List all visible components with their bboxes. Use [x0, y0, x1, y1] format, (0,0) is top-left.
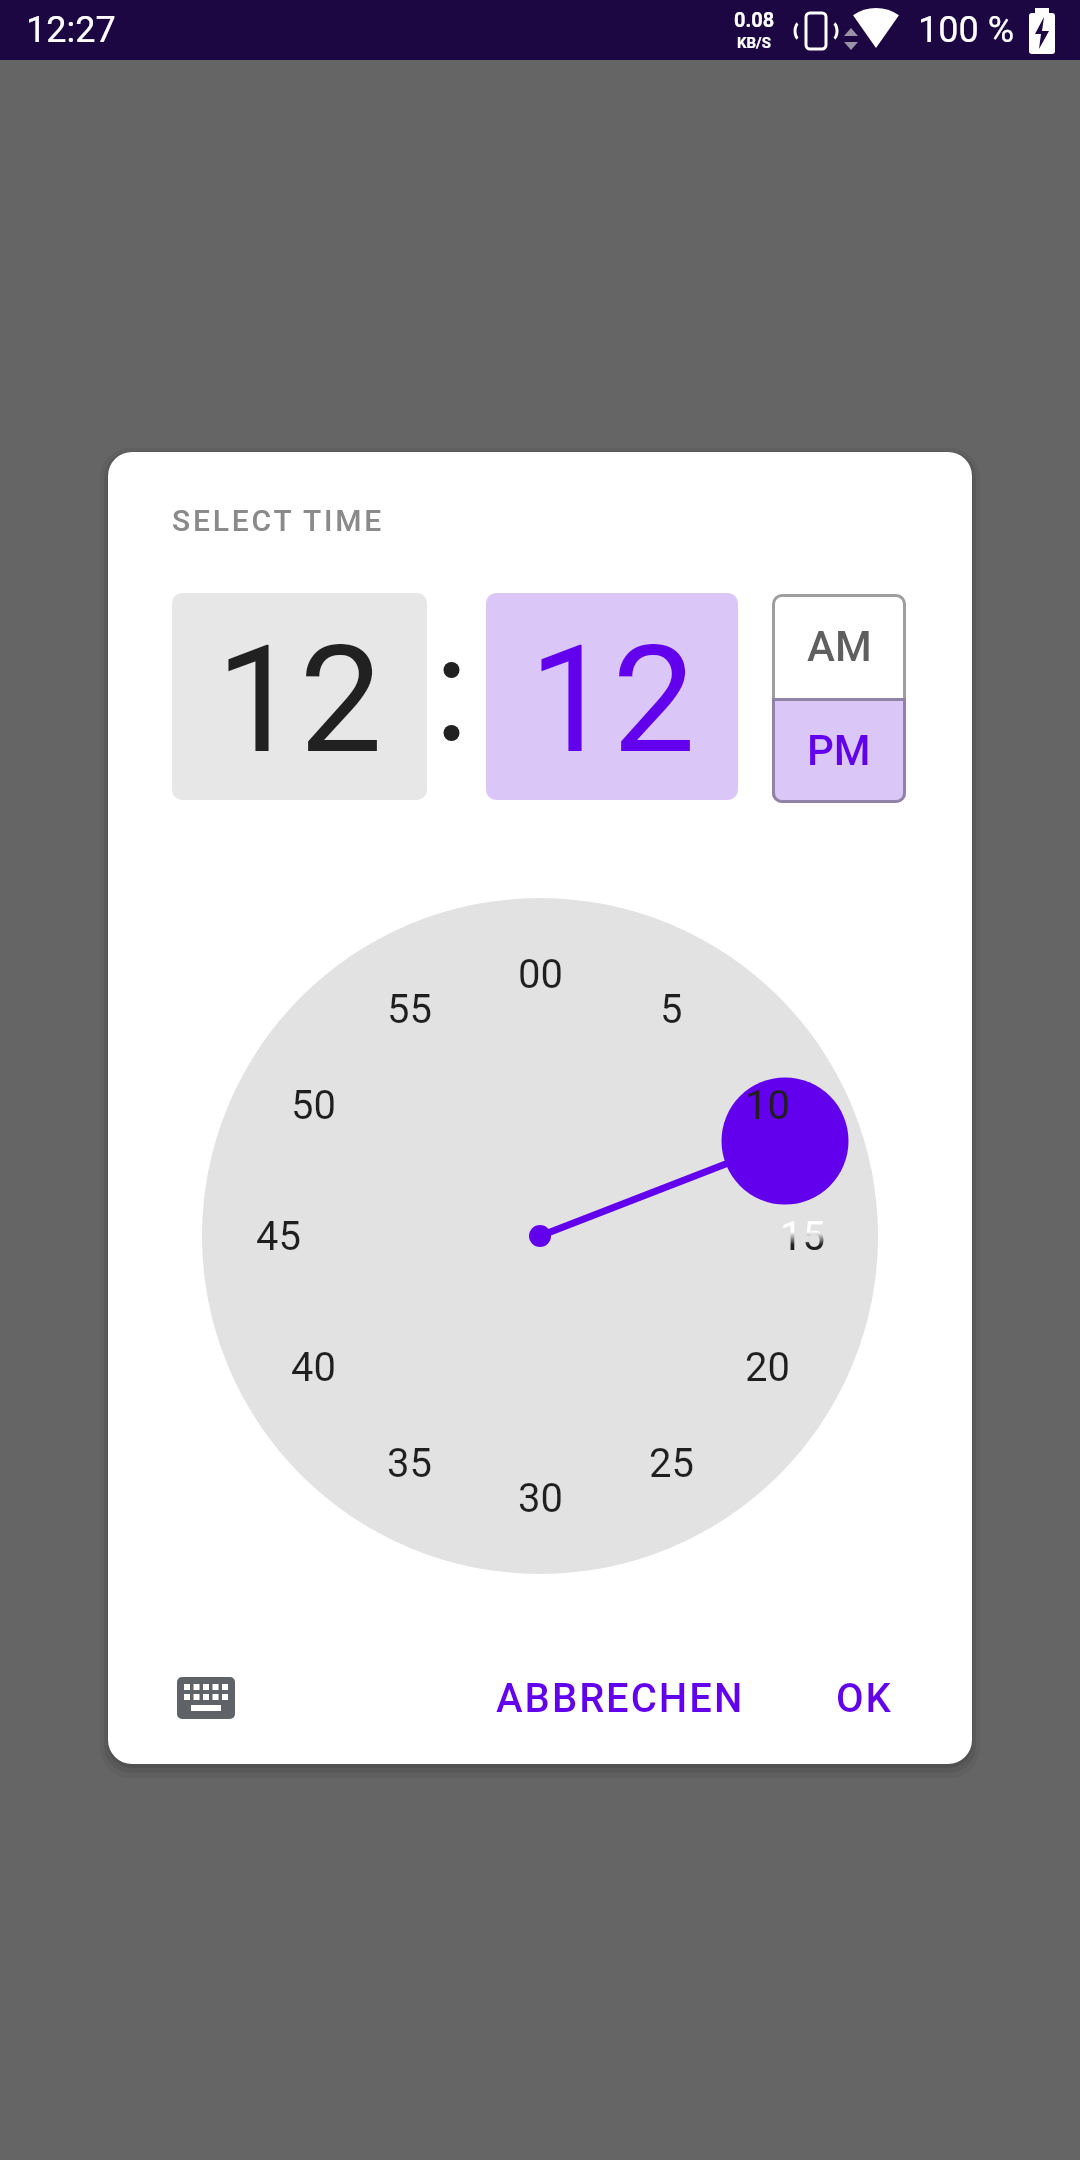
staticText: ABBRECHEN [496, 1675, 745, 1722]
staticText: AM [807, 622, 872, 671]
button[interactable]: 00 [202, 898, 878, 1574]
staticText: 12:27 [26, 9, 116, 51]
staticText: SELECT TIME [172, 503, 385, 538]
staticText: OK [836, 1675, 893, 1722]
staticText: 45 [256, 1213, 301, 1260]
button[interactable]: PM [772, 698, 906, 803]
staticText: 50 [291, 1082, 336, 1129]
staticText: 55 [387, 986, 432, 1033]
staticText: 5 [660, 986, 683, 1033]
staticText: PM [807, 726, 871, 775]
staticText: 15 [780, 1213, 825, 1260]
staticText: 00 [518, 951, 563, 998]
button[interactable]: OK [804, 1658, 924, 1738]
button[interactable]: ABBRECHEN [460, 1658, 780, 1738]
staticText: 12 [216, 614, 383, 787]
staticText: 12 [529, 614, 696, 787]
button[interactable]: 12 [172, 593, 427, 800]
staticText: 40 [291, 1344, 336, 1391]
staticText: 35 [387, 1440, 432, 1487]
button[interactable]: 12 [486, 593, 738, 800]
button[interactable]: AM [772, 594, 906, 698]
staticText: 20 [745, 1344, 790, 1391]
staticText: 10 [745, 1082, 790, 1129]
staticText: 0.08 [734, 8, 775, 31]
button[interactable] [164, 1658, 248, 1738]
staticText: 25 [649, 1440, 694, 1487]
staticText: 30 [518, 1475, 563, 1522]
staticText: KB/S [737, 34, 771, 52]
staticText: 100 % [918, 9, 1014, 51]
